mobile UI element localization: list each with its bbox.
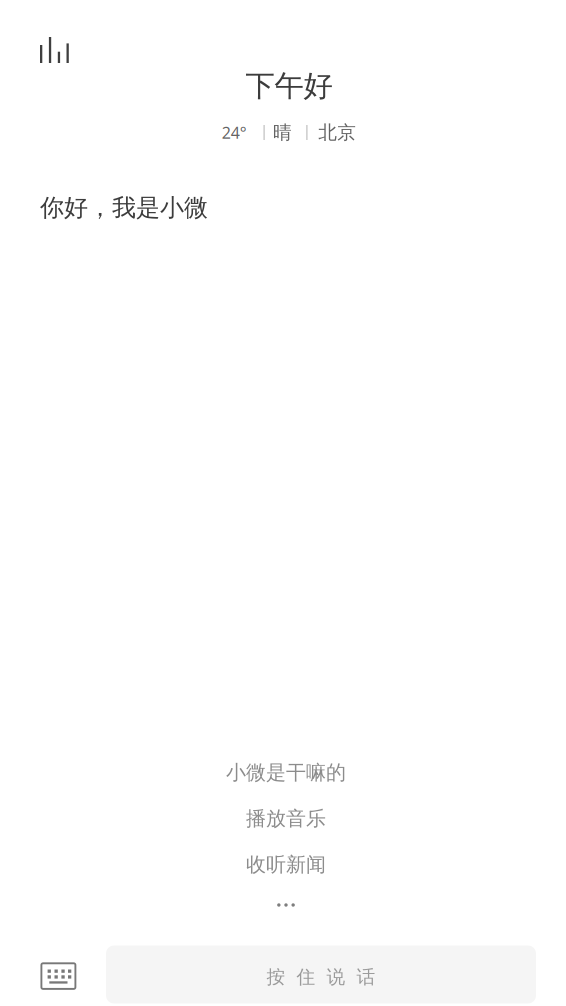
button[interactable]: 播放音乐 <box>171 801 401 835</box>
staticText: 播放音乐 <box>246 806 326 831</box>
button[interactable]: 按住说话 <box>106 945 536 1003</box>
staticText: 晴 <box>273 121 292 144</box>
button[interactable]: 小微是干嘛的 <box>171 755 401 789</box>
staticText: 收听新闻 <box>246 852 326 877</box>
staticText: 24° <box>222 122 247 143</box>
staticText: 北京 <box>318 121 356 144</box>
staticText: 按住说话 <box>266 965 375 988</box>
staticText: 小微是干嘛的 <box>226 760 346 785</box>
button[interactable]: 收听新闻 <box>171 847 401 881</box>
button[interactable]: Keyboard <box>31 953 85 999</box>
button[interactable]: More suggestions <box>171 893 401 919</box>
staticText: 下午好 <box>245 68 332 104</box>
button[interactable]: Voice waveform <box>30 27 79 73</box>
staticText: 你好，我是小微 <box>40 193 208 222</box>
